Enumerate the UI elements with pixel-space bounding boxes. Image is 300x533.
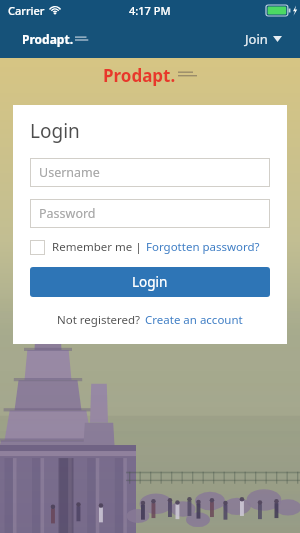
staticText: Username: [39, 164, 100, 181]
staticText: Join: [245, 30, 268, 48]
button[interactable]: Login: [30, 267, 270, 297]
staticText: Forgotten password?: [146, 239, 260, 255]
staticText: Not registered?: [57, 312, 141, 328]
button[interactable]: Join: [241, 26, 286, 52]
staticText: Prodapt.: [103, 64, 176, 87]
button[interactable]: Prodapt home: [22, 31, 89, 47]
staticText: Create an account: [145, 312, 243, 328]
staticText: Remember me |: [52, 239, 142, 255]
staticText: Login: [132, 273, 168, 291]
button[interactable]: Create an account: [145, 312, 243, 328]
staticText: Prodapt.: [22, 31, 74, 47]
button[interactable]: Forgotten password?: [146, 239, 260, 255]
button[interactable]: Remember me checkbox: [30, 240, 45, 255]
button[interactable]: Password: [30, 199, 270, 228]
staticText: Password: [39, 205, 96, 222]
staticText: 4:17 PM: [129, 3, 171, 18]
staticText: Login: [30, 118, 80, 144]
staticText: Carrier: [8, 3, 45, 18]
button[interactable]: Username: [30, 158, 270, 187]
